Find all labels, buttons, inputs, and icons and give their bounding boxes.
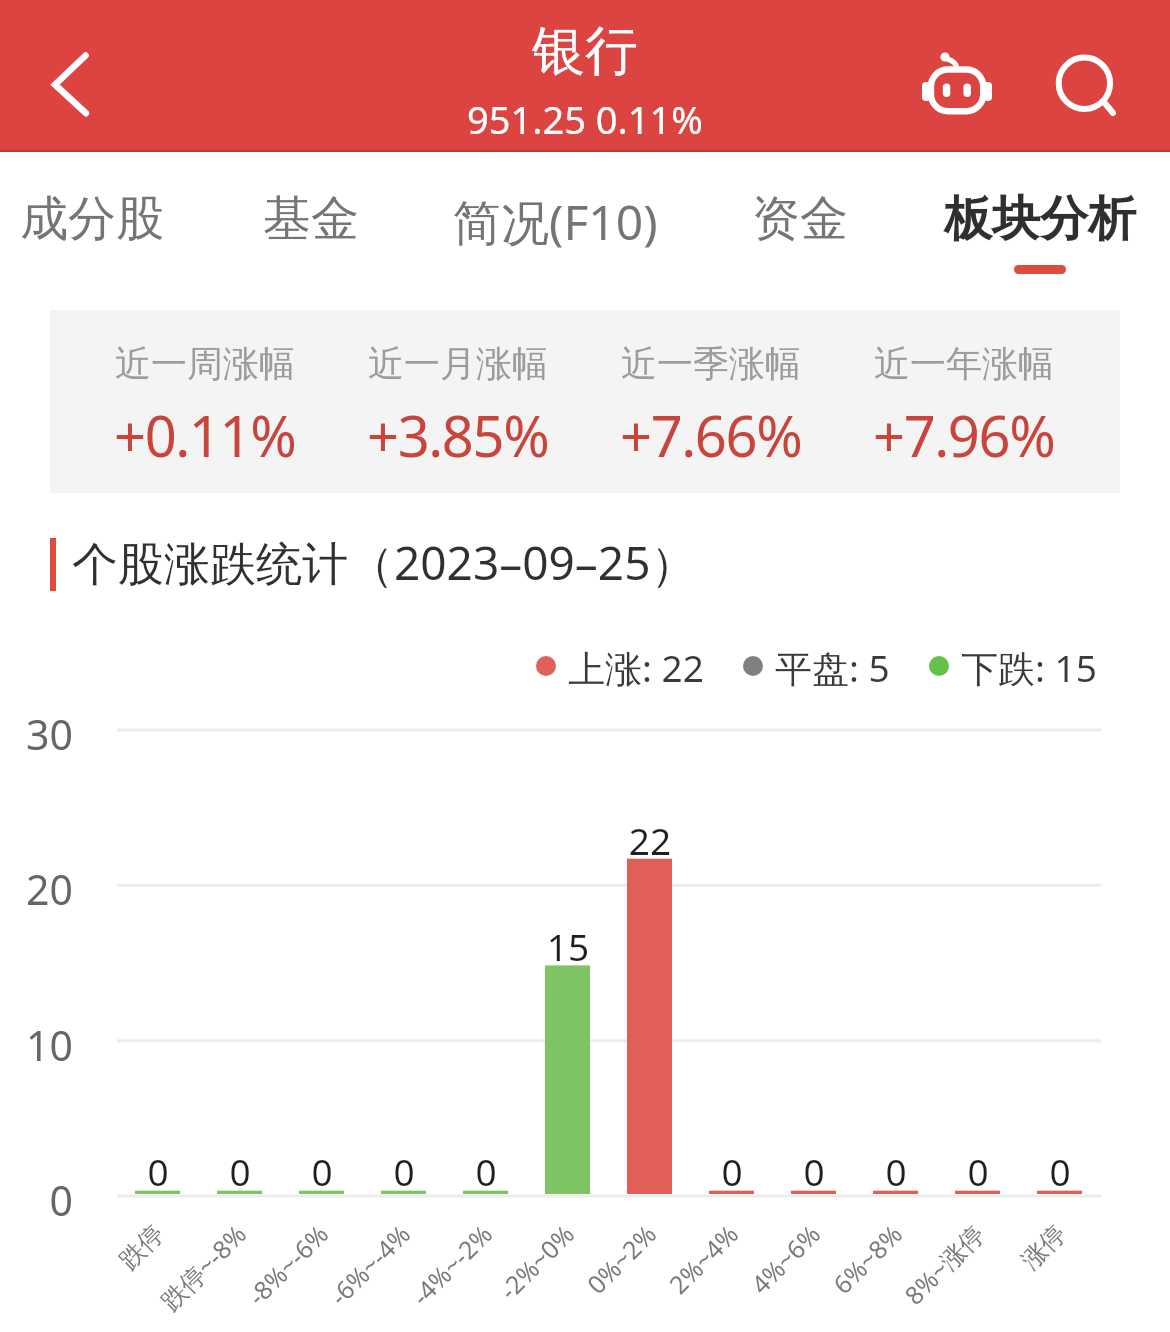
staticText: +7.96% [873,397,1055,473]
staticText: 2%~4% [537,1217,745,1332]
staticText: 951.25 0.11% [467,93,703,145]
staticText: 近一周涨幅 [115,341,295,386]
staticText: 0 [918,1146,1038,1196]
staticText: -8%~-6% [127,1217,335,1332]
button[interactable]: 基金 [211,160,411,290]
staticText: 个股涨跌统计（2023–09–25） [72,531,697,594]
staticText: 4%~6% [619,1217,827,1332]
staticText: 20 [0,861,73,917]
staticText: 近一年涨幅 [874,341,1054,386]
staticText: 0 [754,1146,874,1196]
staticText: 0%~2% [455,1217,663,1332]
button[interactable]: 简况(F10) [437,160,673,290]
staticText: -2%~0% [373,1217,581,1332]
button[interactable]: Back [0,0,145,151]
button[interactable]: 资金 [692,160,908,290]
staticText: 15 [508,921,628,971]
staticText: 涨停 [866,1218,1072,1332]
staticText: 6%~8% [701,1217,909,1332]
staticText: 资金 [752,189,848,249]
staticText: 下跌: 15 [961,642,1097,690]
staticText: 板块分析 [944,189,1136,249]
staticText: 0 [426,1146,546,1196]
staticText: +3.85% [367,397,549,473]
staticText: -4%~-2% [291,1217,499,1332]
staticText: 30 [0,706,73,762]
staticText: 0 [836,1146,956,1196]
staticText: 上涨: 22 [568,642,704,690]
staticText: 10 [0,1017,73,1073]
staticText: 跌停~-8% [45,1217,253,1332]
staticText: 0 [672,1146,792,1196]
staticText: 简况(F10) [453,189,658,255]
staticText: +0.11% [114,397,296,473]
staticText: 成分股 [20,189,164,249]
button[interactable]: Search [1022,18,1148,144]
staticText: 平盘: 5 [775,642,890,690]
staticText: 银行 [532,18,638,85]
staticText: 近一季涨幅 [621,341,801,386]
button[interactable]: 成分股 [0,160,188,290]
staticText: 0 [262,1146,382,1196]
staticText: 跌停 [0,1218,170,1332]
staticText: 8%~涨停 [783,1217,991,1332]
staticText: 0 [98,1146,218,1196]
staticText: 0 [1000,1146,1120,1196]
staticText: 22 [590,815,710,865]
staticText: 0 [344,1146,464,1196]
staticText: -6%~-4% [209,1217,417,1332]
staticText: 近一月涨幅 [368,341,548,386]
button[interactable]: 板块分析 [928,160,1152,290]
staticText: 0 [0,1172,73,1228]
staticText: +7.66% [620,397,802,473]
staticText: 基金 [263,189,359,249]
button[interactable]: AI assistant [892,18,1018,144]
staticText: 0 [180,1146,300,1196]
